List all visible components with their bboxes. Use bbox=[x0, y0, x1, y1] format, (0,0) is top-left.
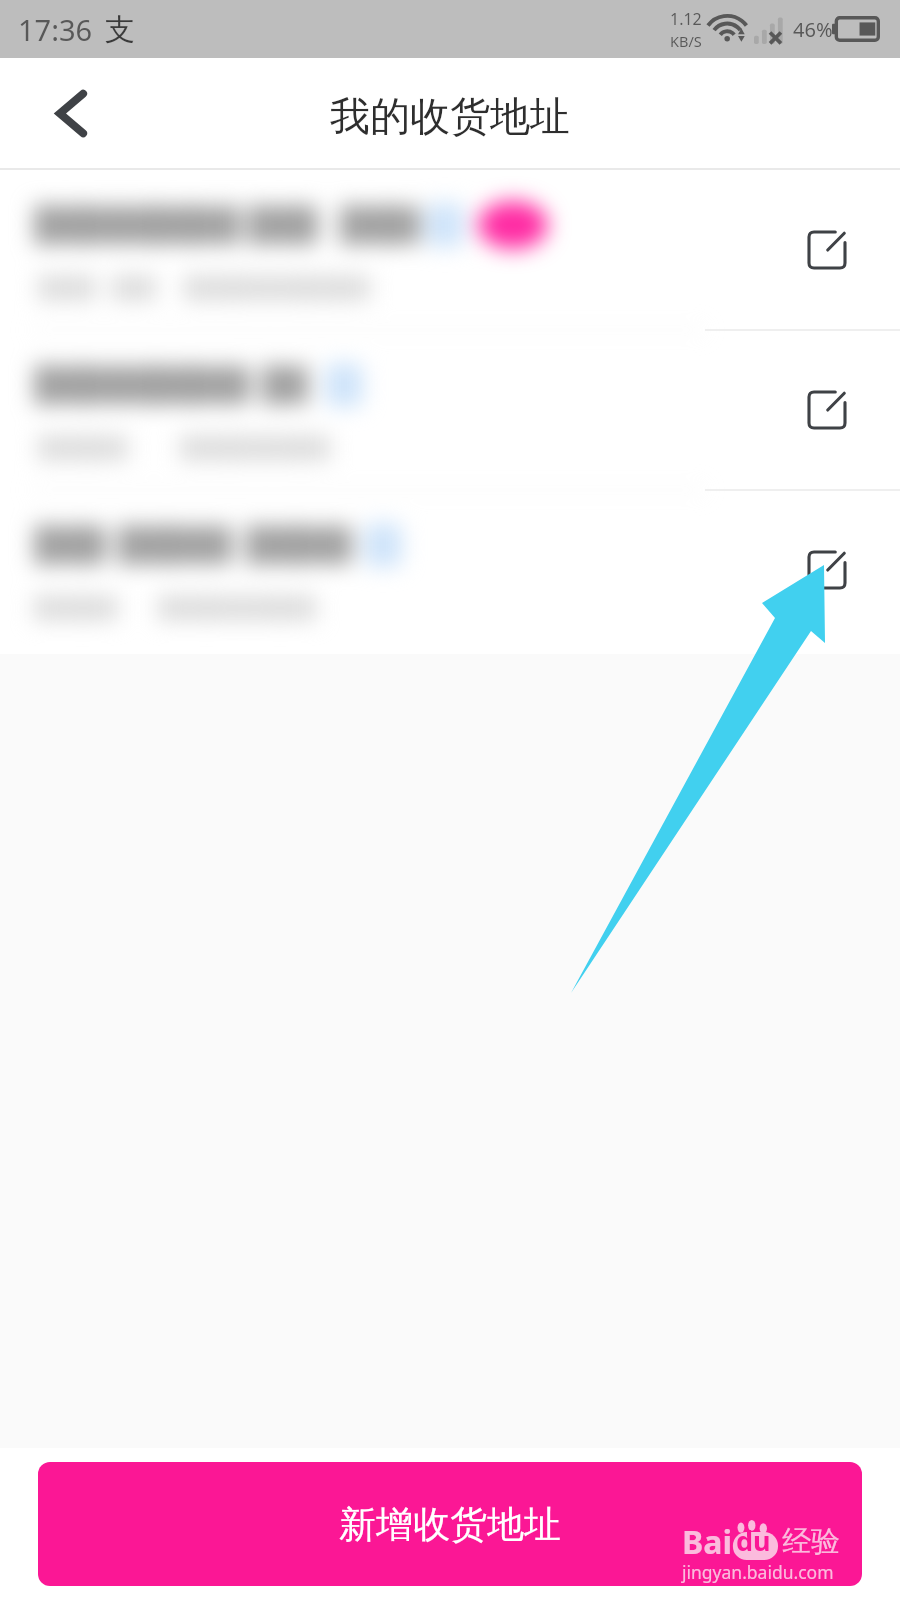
staticText: 新增收货地址 bbox=[339, 1501, 561, 1548]
staticText: 支 bbox=[105, 11, 135, 49]
staticText: 46% bbox=[793, 16, 833, 43]
button[interactable]: 新增收货地址 bbox=[38, 1462, 862, 1586]
button[interactable]: Edit address bbox=[0, 330, 900, 490]
staticText: KB/S bbox=[670, 31, 702, 51]
staticText: 17:36 bbox=[18, 10, 93, 49]
button[interactable]: Edit address bbox=[754, 330, 900, 490]
staticText: jingyan.baidu.com bbox=[682, 1560, 834, 1584]
staticText: Bai bbox=[682, 1520, 733, 1560]
staticText: du bbox=[736, 1522, 771, 1559]
staticText: 经验 bbox=[782, 1523, 840, 1560]
button[interactable]: Back bbox=[38, 80, 104, 146]
staticText: 1.12 bbox=[670, 8, 702, 30]
button[interactable]: Edit address bbox=[0, 170, 900, 330]
button[interactable]: Edit address bbox=[0, 490, 900, 650]
button[interactable]: Edit address bbox=[754, 170, 900, 330]
button[interactable]: Edit address bbox=[754, 490, 900, 650]
staticText: 我的收货地址 bbox=[330, 91, 570, 141]
